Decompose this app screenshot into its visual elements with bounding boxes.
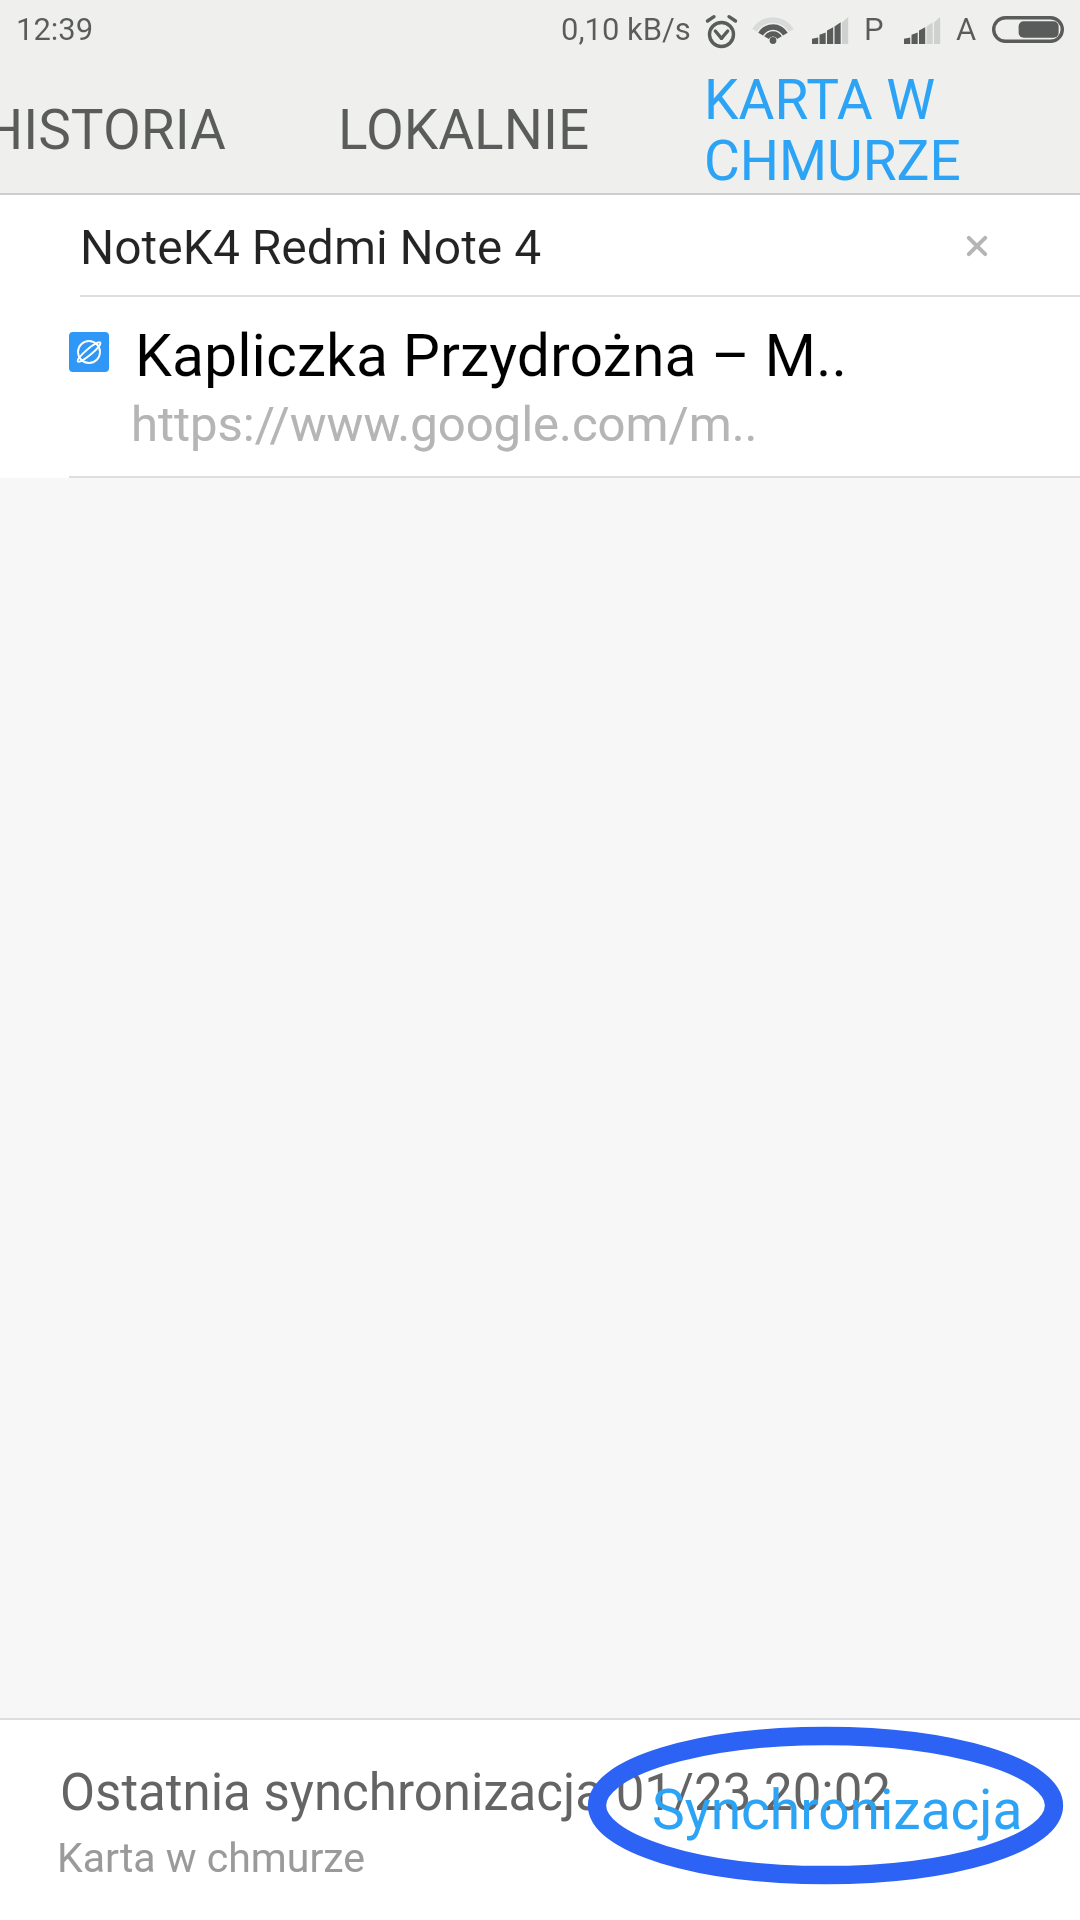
staticText: Karta w chmurze [57,1834,366,1882]
staticText: 12:39 [16,11,94,47]
staticText: LOKALNIE [338,98,590,162]
staticText: KARTA W CHMURZE [704,68,994,193]
staticText: Synchronizacja [652,1778,1023,1842]
button[interactable]: Clear search [949,218,1005,274]
button[interactable]: LOKALNIE [265,62,665,194]
button[interactable]: KARTA W CHMURZE [675,62,1080,194]
button[interactable]: Synchronizacja [632,1768,1043,1852]
staticText: NoteK4 Redmi Note 4 [80,219,542,275]
staticText: A [956,11,977,47]
staticText: Ostatnia synchronizacja 01/23 20:02 [60,1763,891,1823]
staticText: 0,10 kB/s [561,11,691,47]
button[interactable]: NoteK4 Redmi Note 4 [0,194,1080,294]
staticText: HISTORIA [0,98,226,162]
button[interactable]: Kapliczka Przydrożna – M.. [0,295,1080,474]
button[interactable]: HISTORIA [0,62,225,194]
staticText: https://www.google.com/m.. [131,396,758,453]
staticText: P [864,11,884,47]
staticText: Kapliczka Przydrożna – M.. [135,321,848,390]
